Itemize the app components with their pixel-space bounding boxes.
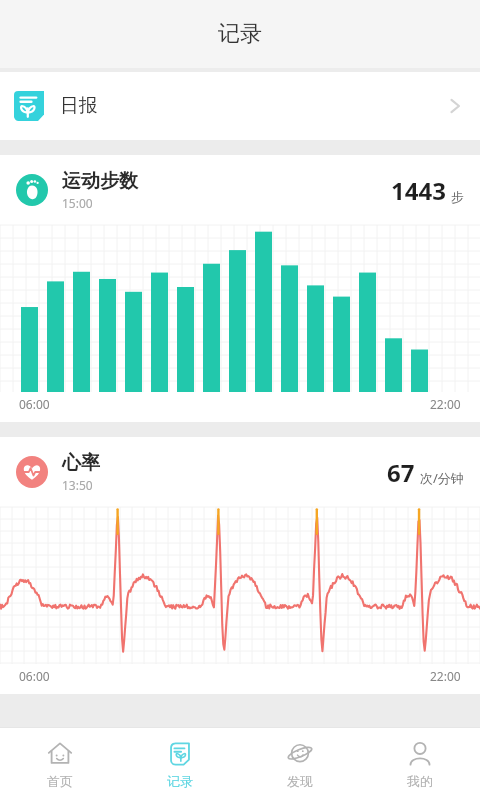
button[interactable]: 我的 bbox=[360, 728, 480, 800]
staticText: 记录 bbox=[167, 773, 193, 789]
staticText: 我的 bbox=[407, 773, 433, 789]
staticText: 步 bbox=[451, 189, 464, 205]
staticText: 发现 bbox=[287, 773, 313, 789]
staticText: 13:50 bbox=[62, 477, 93, 493]
staticText: 06:00 bbox=[19, 396, 50, 412]
button[interactable]: 心率 bbox=[0, 437, 480, 694]
staticText: 67 bbox=[387, 456, 415, 489]
button[interactable]: 发现 bbox=[240, 728, 360, 800]
staticText: 22:00 bbox=[430, 668, 461, 684]
staticText: 06:00 bbox=[19, 668, 50, 684]
button[interactable]: 日报 bbox=[0, 72, 480, 140]
staticText: 记录 bbox=[218, 20, 262, 48]
button[interactable]: 运动步数 bbox=[0, 155, 480, 422]
staticText: 日报 bbox=[60, 94, 98, 118]
staticText: 运动步数 bbox=[62, 169, 138, 193]
staticText: 22:00 bbox=[430, 396, 461, 412]
button[interactable]: 首页 bbox=[0, 728, 120, 800]
staticText: 首页 bbox=[47, 773, 73, 789]
staticText: 1443 bbox=[391, 174, 446, 207]
staticText: 次/分钟 bbox=[420, 469, 464, 487]
staticText: 心率 bbox=[62, 451, 100, 475]
other: Open daily report bbox=[444, 95, 466, 117]
staticText: 15:00 bbox=[62, 195, 93, 211]
button[interactable]: 记录 bbox=[120, 728, 240, 800]
